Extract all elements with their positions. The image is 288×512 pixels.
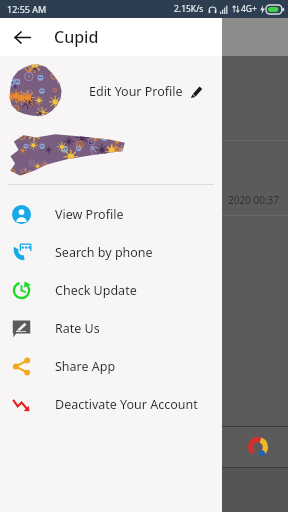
staticText: 2020 00:37 bbox=[228, 193, 280, 207]
staticText: Share App bbox=[55, 358, 116, 375]
button[interactable]: View Profile bbox=[0, 195, 222, 233]
button[interactable]: Share App bbox=[0, 347, 222, 385]
button[interactable]: Search by phone bbox=[0, 233, 222, 271]
staticText: Cupid bbox=[54, 26, 99, 48]
staticText: Deactivate Your Account bbox=[55, 396, 198, 413]
staticText: View Profile bbox=[55, 206, 124, 223]
staticText: 2.15K/s bbox=[174, 3, 204, 15]
staticText: Rate Us bbox=[55, 320, 100, 337]
button[interactable]: Check Update bbox=[0, 271, 222, 309]
button[interactable]: Back bbox=[6, 21, 38, 53]
button[interactable]: Deactivate Your Account bbox=[0, 385, 222, 423]
staticText: Edit Your Profile bbox=[89, 83, 183, 100]
button[interactable]: Rate Us bbox=[0, 309, 222, 347]
button[interactable]: Edit Your Profile bbox=[85, 79, 208, 104]
staticText: 4G+ bbox=[241, 3, 257, 15]
staticText: Search by phone bbox=[55, 244, 153, 261]
staticText: 12:55 AM bbox=[7, 3, 47, 15]
staticText: Check Update bbox=[55, 282, 137, 299]
